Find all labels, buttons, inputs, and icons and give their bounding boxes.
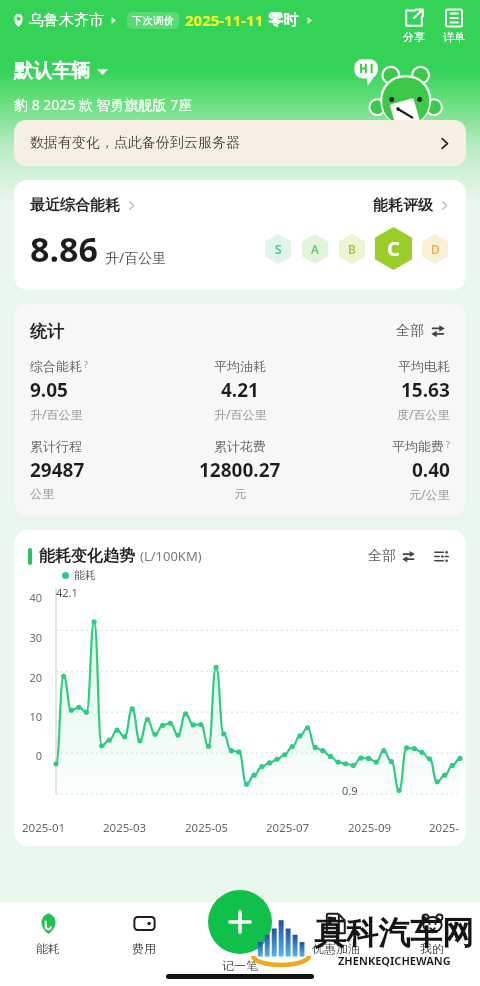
staticText: 9.05 [30,377,68,403]
staticText: 2025-05 [185,820,229,836]
staticText: 全部 [368,547,396,565]
staticText: 记一笔 [222,958,258,973]
staticText: 4.21 [221,377,259,403]
staticText: 累计行程 [30,438,82,454]
staticText: 详单 [443,30,465,44]
button[interactable]: 最近综合能耗 [30,194,137,217]
button[interactable]: D [420,234,450,264]
staticText: 42.1 [56,585,78,600]
staticText: 8.86 [30,226,98,272]
staticText: ? [84,358,88,370]
staticText: 20 [29,670,42,685]
staticText: 能耗评级 [373,196,433,215]
button[interactable]: 平均油耗 [170,358,310,422]
button[interactable]: 能耗评级 [373,194,450,217]
button[interactable]: 下次调价 [127,6,313,34]
button[interactable]: C [372,227,415,270]
staticText: 2025- [429,820,460,836]
staticText: 乌鲁木齐市 [29,11,104,30]
button[interactable]: 详单 [438,6,470,46]
staticText: D [431,241,440,257]
staticText: 升/百公里 [30,406,83,422]
button[interactable]: 默认车辆 [14,57,108,85]
button[interactable]: 分享 [398,6,430,46]
staticText: 分享 [403,30,425,44]
staticText: 平均油耗 [214,358,266,374]
staticText: 平均电耗 [398,358,450,374]
staticText: 累计花费 [214,438,266,454]
button[interactable]: 记一笔 [208,890,272,954]
staticText: 真科汽车网 [314,913,474,953]
button[interactable]: 优惠加油 [288,908,384,960]
staticText: 12800.27 [199,457,281,483]
staticText: 0 [35,748,42,763]
button[interactable]: A [300,234,330,264]
staticText: 29487 [30,457,85,483]
button[interactable]: B [337,234,367,264]
staticText: 度/百公里 [397,406,450,422]
staticText: 综合能耗 [30,358,82,374]
staticText: S [275,241,282,257]
staticText: (L/100KM) [140,547,202,565]
button[interactable]: 平均能费 [310,438,450,502]
staticText: 公里 [30,486,54,501]
staticText: 元/公里 [409,486,450,502]
staticText: 能耗 [74,568,96,582]
staticText: 默认车辆 [14,59,90,83]
button[interactable]: 能耗 [0,908,96,960]
staticText: 平均能费 [392,438,444,454]
staticText: 0.9 [342,783,358,798]
staticText: 2025-11-11 [185,10,264,30]
staticText: 升/百公里 [105,248,167,267]
staticText: 能耗变化趋势 [39,546,135,566]
button[interactable]: 累计行程 [30,438,170,501]
button[interactable]: 乌鲁木齐市 [12,6,117,35]
staticText: 费用 [132,941,156,956]
staticText: 10 [29,709,42,724]
staticText: 2025-03 [103,820,147,836]
staticText: 升/百公里 [214,406,267,422]
button[interactable]: 我的 [384,908,480,960]
button[interactable]: 综合能耗 [30,358,170,422]
staticText: 2025-07 [266,820,310,836]
button[interactable]: 全部 [392,318,450,344]
staticText: 我的 [420,941,444,956]
staticText: 能耗 [36,941,60,956]
staticText: 15.63 [401,377,450,403]
staticText: 统计 [30,321,64,342]
button[interactable]: 数据有变化，点此备份到云服务器 [14,120,466,166]
button[interactable]: 全部 [365,544,419,568]
staticText: 下次调价 [132,14,174,27]
staticText: 元 [234,486,246,501]
staticText: 2025-01 [22,820,66,836]
staticText: A [311,241,319,257]
staticText: ? [446,438,450,450]
staticText: C [387,235,400,262]
staticText: 30 [29,630,42,645]
staticText: 全部 [396,322,424,340]
staticText: ZHENKEQICHEWANG [338,953,451,968]
staticText: 豹 8 2025 款 智勇旗舰版 7座 [14,95,193,114]
staticText: 最近综合能耗 [30,196,120,215]
button[interactable]: 图表设置 [431,546,452,567]
button[interactable]: 费用 [96,908,192,960]
staticText: 2025-09 [348,820,392,836]
staticText: B [348,241,356,257]
button[interactable]: S [263,234,293,264]
button[interactable]: 累计花费 [170,438,310,501]
button[interactable]: 平均电耗 [310,358,450,422]
staticText: 数据有变化，点此备份到云服务器 [30,134,240,152]
staticText: 优惠加油 [312,941,360,956]
staticText: 0.40 [412,457,450,483]
staticText: 零时 [268,11,298,30]
staticText: 40 [29,590,42,605]
